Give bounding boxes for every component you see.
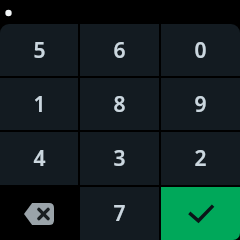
staticText: 9 bbox=[194, 90, 207, 119]
staticText: 6 bbox=[113, 36, 126, 65]
button[interactable]: 6 bbox=[80, 24, 159, 76]
button[interactable]: 3 bbox=[80, 132, 159, 185]
staticText: 7 bbox=[113, 199, 126, 228]
button[interactable]: Confirm bbox=[161, 187, 240, 240]
button[interactable]: 9 bbox=[161, 78, 240, 130]
button[interactable]: 0 bbox=[161, 24, 240, 76]
button[interactable]: 4 bbox=[0, 132, 78, 185]
staticText: 1 bbox=[33, 90, 46, 119]
button[interactable]: 2 bbox=[161, 132, 240, 185]
staticText: 3 bbox=[113, 144, 126, 173]
staticText: 4 bbox=[33, 144, 46, 173]
button[interactable]: 1 bbox=[0, 78, 78, 130]
button[interactable]: 5 bbox=[0, 24, 78, 76]
staticText: 8 bbox=[113, 90, 126, 119]
button[interactable]: 7 bbox=[80, 187, 159, 240]
button[interactable]: Backspace bbox=[0, 187, 78, 240]
staticText: 0 bbox=[194, 36, 207, 65]
button[interactable]: 8 bbox=[80, 78, 159, 130]
staticText: 2 bbox=[194, 144, 207, 173]
staticText: 5 bbox=[33, 36, 46, 65]
